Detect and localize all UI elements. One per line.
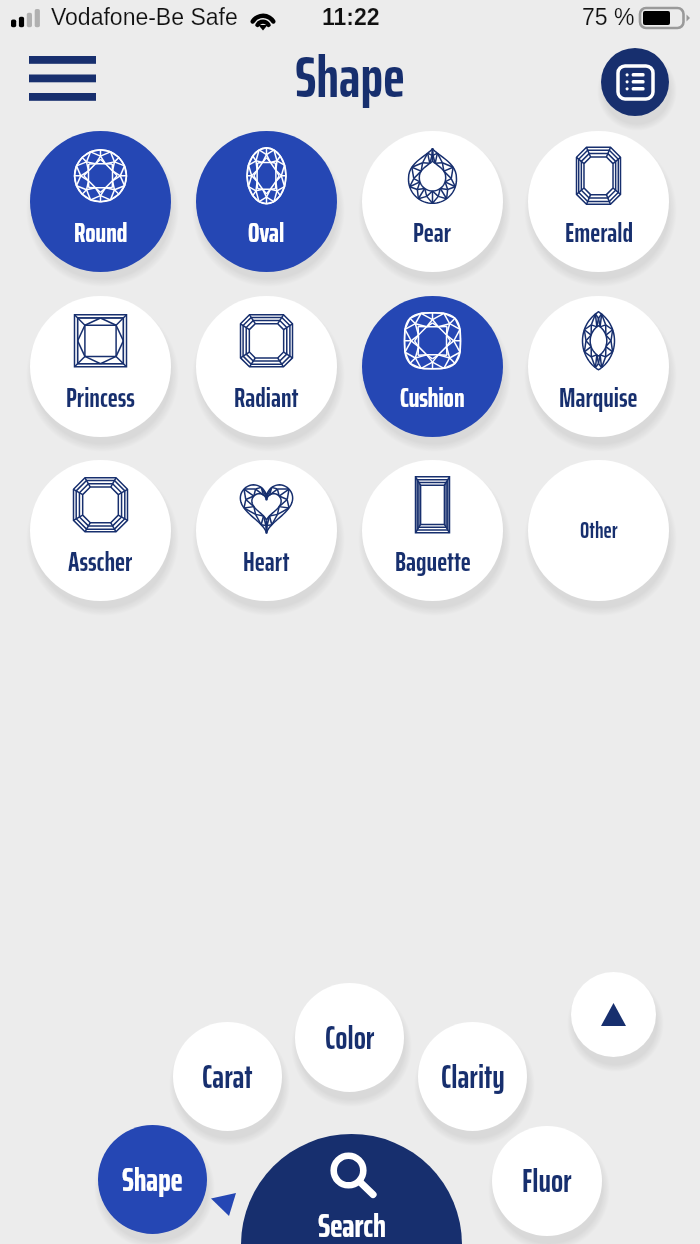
button[interactable]: Search [241,1134,462,1244]
staticText: Oval [248,211,285,253]
button[interactable]: Cushion [362,296,503,437]
staticText: Cushion [400,376,465,418]
staticText: Baguette [395,540,471,582]
staticText: 11:22 [322,4,380,30]
button[interactable]: Collapse [571,972,656,1057]
button[interactable]: Marquise [528,296,669,437]
staticText: Search [318,1200,386,1244]
staticText: Shape [122,1155,183,1205]
staticText: Radiant [234,376,299,418]
button[interactable]: Emerald [528,131,669,272]
button[interactable]: Color [295,983,404,1092]
button[interactable]: Princess [30,296,171,437]
staticText: Vodafone-Be Safe [51,4,238,30]
button[interactable]: Asscher [30,460,171,601]
button[interactable]: Shape [98,1125,207,1234]
button[interactable]: Other [528,460,669,601]
staticText: Shape [295,31,405,122]
button[interactable]: Pear [362,131,503,272]
staticText: Clarity [441,1052,505,1102]
button[interactable]: Oval [196,131,337,272]
staticText: Princess [66,376,135,418]
staticText: Other [580,513,618,548]
button[interactable]: Heart [196,460,337,601]
button[interactable]: Clarity [418,1022,527,1131]
staticText: Carat [202,1052,253,1102]
button[interactable]: Baguette [362,460,503,601]
button[interactable]: Carat [173,1022,282,1131]
staticText: Heart [243,540,290,582]
staticText: Asscher [68,540,133,582]
staticText: Round [74,211,128,253]
button[interactable]: Menu [22,48,103,108]
button[interactable]: Round [30,131,171,272]
staticText: Fluor [522,1156,572,1206]
staticText: 75 % [582,4,635,30]
staticText: Marquise [559,376,638,418]
button[interactable]: Fluor [492,1126,602,1236]
staticText: Color [325,1013,375,1063]
button[interactable]: Radiant [196,296,337,437]
button[interactable]: List view [601,48,669,116]
staticText: Emerald [565,211,633,253]
staticText: Pear [413,211,452,253]
